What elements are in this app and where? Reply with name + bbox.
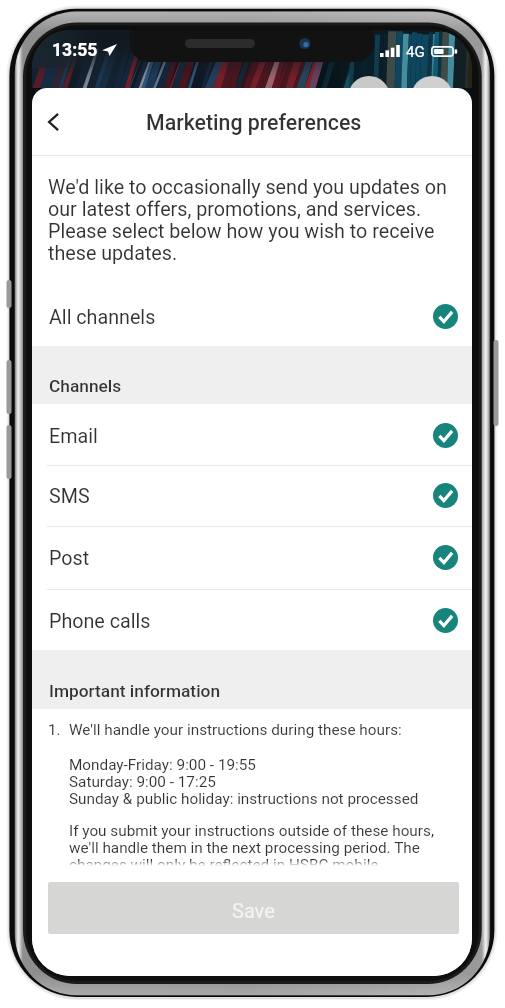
button[interactable]: All channels [32,286,472,346]
staticText: 13:55 [52,40,98,61]
staticText: 4G [406,43,425,61]
staticText: Marketing preferences [146,110,362,135]
staticText: Important information [49,681,221,701]
button[interactable]: Post [32,526,472,588]
staticText: Post [49,547,90,570]
staticText: SMS [49,485,90,508]
staticText: If you submit your instructions outside … [69,822,437,874]
staticText: Channels [49,376,122,396]
staticText: Monday-Friday: 9:00 - 19:55 Saturday: 9:… [69,756,419,808]
button[interactable]: Email [32,404,472,466]
staticText: 1. [48,721,61,739]
staticText: We'll handle your instructions during th… [69,721,402,739]
staticText: Email [49,425,98,448]
button[interactable]: Phone calls [32,589,472,651]
staticText: All channels [49,306,156,329]
button[interactable]: SMS [32,465,472,526]
button[interactable]: Back [32,98,77,146]
staticText: Phone calls [49,610,151,633]
staticText: Save [232,899,275,922]
staticText: We'd like to occasionally send you updat… [48,176,454,265]
